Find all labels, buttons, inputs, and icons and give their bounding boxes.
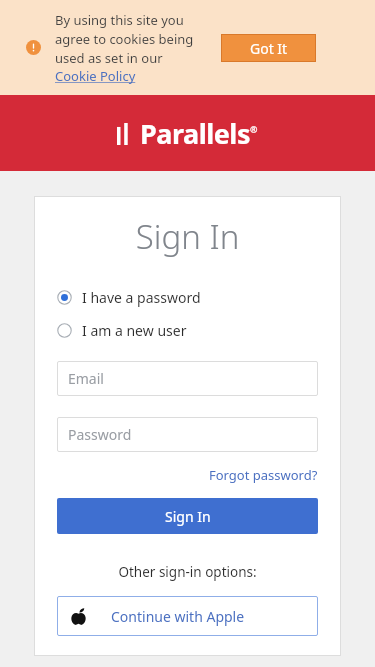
staticText: By using this site you agree to cookies … [55, 11, 205, 67]
staticText: Sign In [165, 507, 211, 526]
staticText: Continue with Apple [111, 607, 245, 626]
button[interactable]: Cookie Policy [55, 67, 136, 85]
staticText: Email [68, 369, 104, 388]
button[interactable]: Got It [221, 34, 316, 62]
button[interactable]: Parallels home [117, 115, 258, 152]
button[interactable]: I have a password [57, 288, 201, 307]
button[interactable]: Continue with Apple [57, 596, 318, 636]
staticText: I have a password [82, 288, 201, 307]
staticText: Password [68, 425, 132, 444]
staticText: ® [250, 123, 258, 135]
staticText: Parallels [140, 115, 250, 152]
button[interactable]: I am a new user [57, 321, 187, 340]
staticText: I am a new user [82, 321, 187, 340]
button[interactable]: Sign In [57, 498, 318, 534]
staticText: Got It [250, 39, 288, 58]
button[interactable]: Password [57, 417, 318, 452]
staticText: Sign In [57, 214, 318, 259]
button[interactable]: Email [57, 361, 318, 396]
staticText: Other sign-in options: [57, 563, 318, 581]
button[interactable]: Forgot password? [209, 466, 318, 484]
